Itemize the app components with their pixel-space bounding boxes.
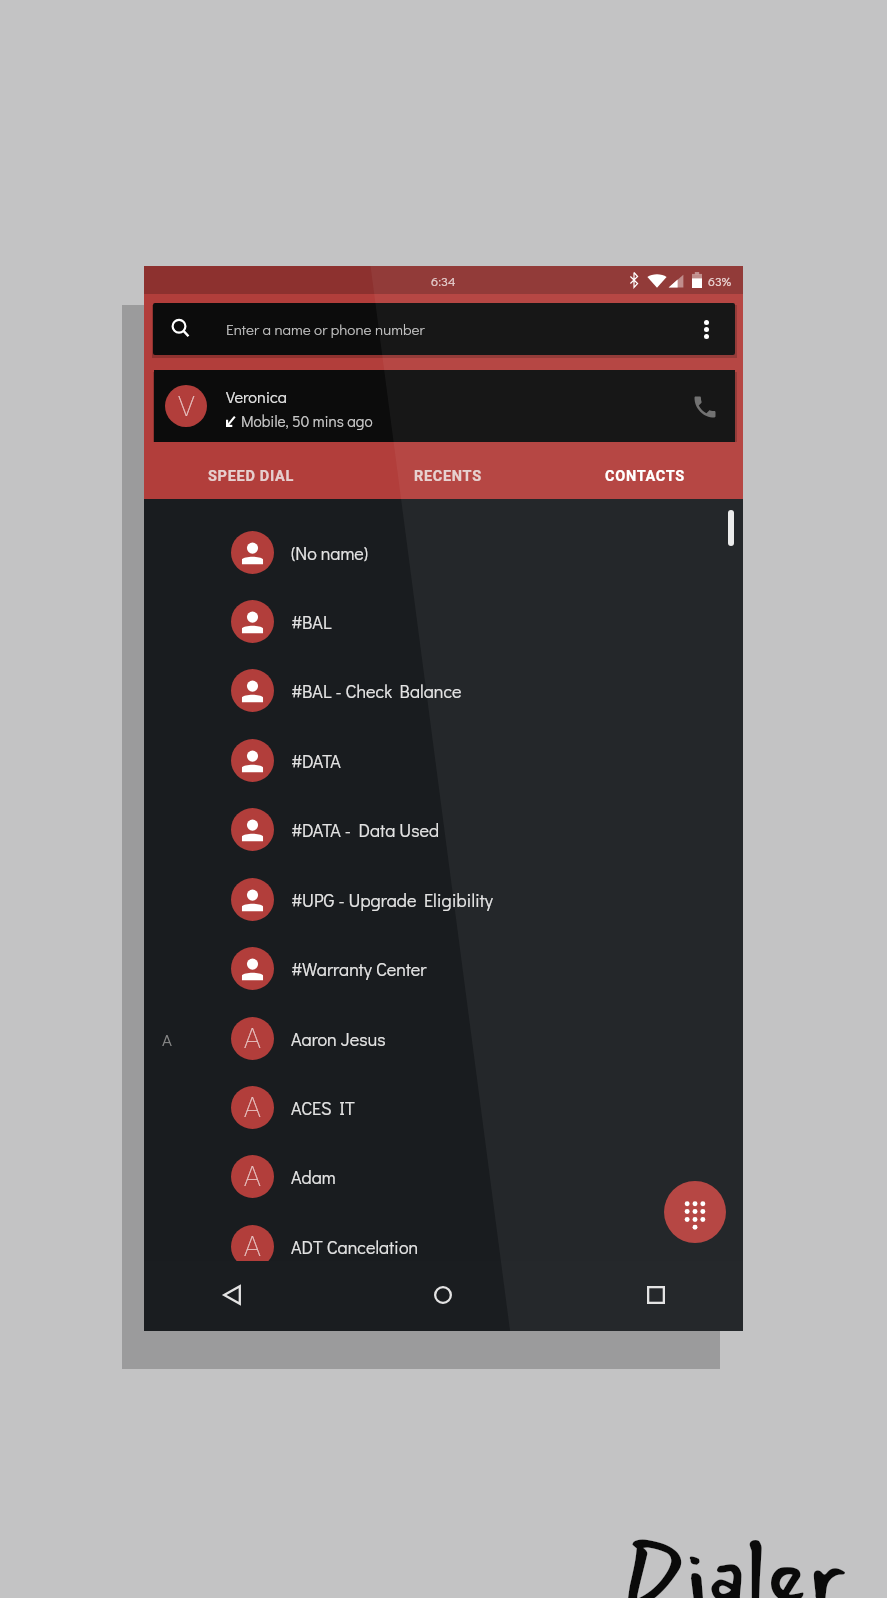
staticText: (No name) <box>291 541 368 565</box>
staticText: Veronica <box>226 386 287 407</box>
button[interactable]: #DATA - Data Used <box>144 795 743 864</box>
button[interactable]: #BAL <box>144 587 743 656</box>
staticText: RECENTS <box>414 468 482 485</box>
button[interactable]: #DATA <box>144 726 743 795</box>
staticText: ACES IT <box>291 1096 355 1120</box>
staticText: Aaron Jesus <box>291 1027 386 1051</box>
button[interactable]: A <box>144 1004 743 1073</box>
staticText: #DATA <box>291 749 341 773</box>
staticText: 63% <box>708 273 731 290</box>
staticText: A <box>244 1091 261 1124</box>
staticText: 6:34 <box>431 272 456 289</box>
button[interactable]: V <box>154 370 735 442</box>
staticText: #DATA - Data Used <box>291 818 440 842</box>
button[interactable]: #Warranty Center <box>144 934 743 1003</box>
staticText: CONTACTS <box>605 468 685 485</box>
button[interactable]: Recent apps <box>620 1260 692 1330</box>
staticText: A <box>244 1022 261 1055</box>
button[interactable]: A <box>144 1142 743 1211</box>
staticText: #BAL - Check Balance <box>291 679 462 703</box>
button[interactable]: More options <box>686 309 726 349</box>
button[interactable]: A <box>144 1073 743 1142</box>
button[interactable]: (No name) <box>144 518 743 587</box>
staticText: Mobile, 50 mins ago <box>241 411 373 431</box>
button[interactable]: CONTACTS <box>546 442 743 499</box>
button[interactable]: SPEED DIAL <box>153 442 349 499</box>
staticText: #UPG - Upgrade Eligibility <box>291 888 493 912</box>
button[interactable]: Home <box>407 1260 479 1330</box>
staticText: Dialer <box>621 1507 847 1598</box>
staticText: A <box>244 1230 261 1261</box>
button[interactable]: Open dialpad <box>664 1181 726 1243</box>
staticText: V <box>178 390 195 423</box>
staticText: ADT Cancelation <box>291 1235 419 1259</box>
staticText: #BAL <box>291 610 332 634</box>
staticText: Adam <box>291 1165 336 1189</box>
staticText: Enter a name or phone number <box>226 319 425 339</box>
button[interactable]: RECENTS <box>349 442 546 499</box>
staticText: A <box>162 1028 172 1050</box>
button[interactable]: A <box>144 1212 743 1261</box>
staticText: #Warranty Center <box>291 957 427 981</box>
staticText: SPEED DIAL <box>208 468 295 485</box>
button[interactable]: Call <box>681 383 729 431</box>
button[interactable]: Back <box>196 1260 268 1330</box>
button[interactable]: Enter a name or phone number <box>153 303 735 355</box>
button[interactable]: #BAL - Check Balance <box>144 656 743 725</box>
staticText: A <box>244 1160 261 1193</box>
button[interactable]: #UPG - Upgrade Eligibility <box>144 865 743 934</box>
